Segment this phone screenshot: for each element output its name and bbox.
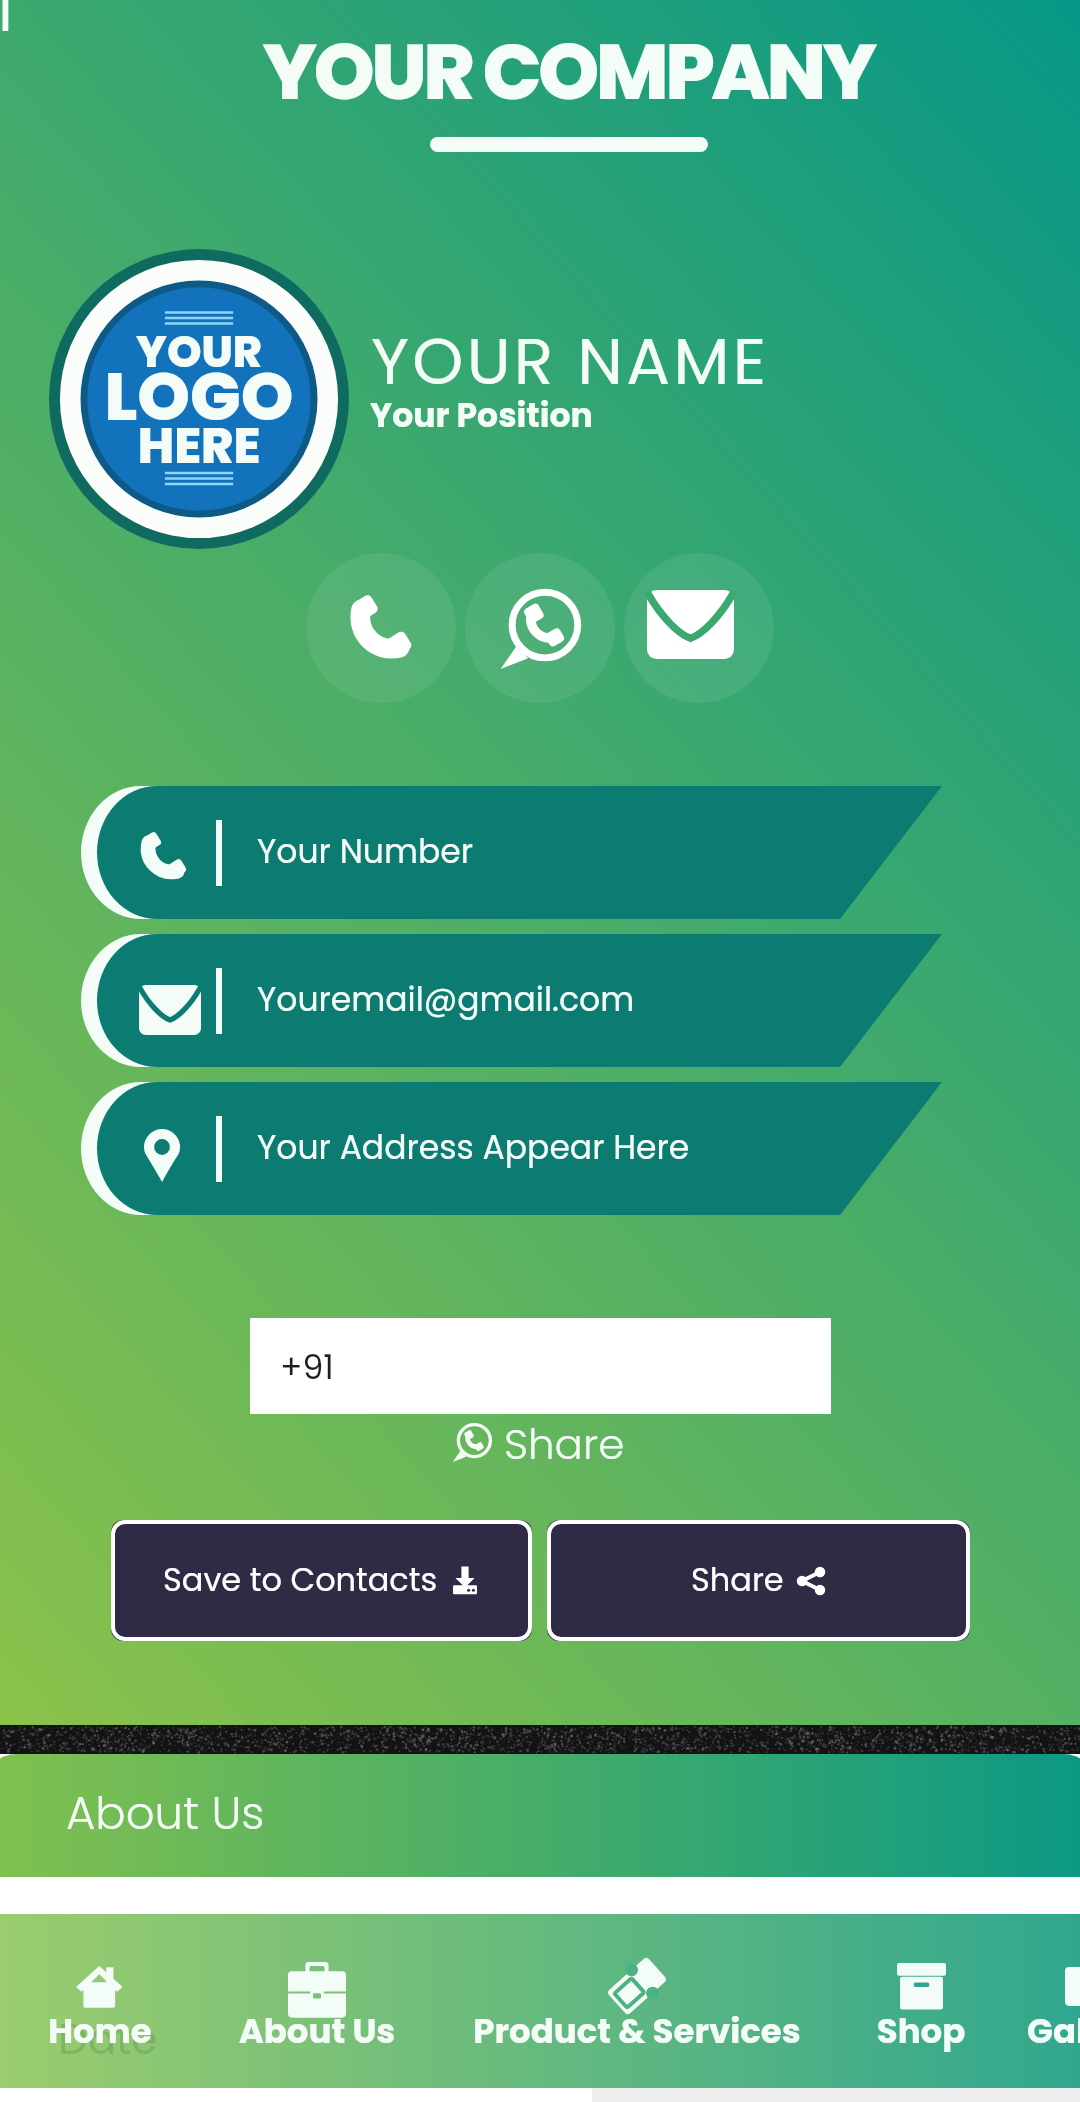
button[interactable]: WhatsApp	[465, 553, 615, 703]
button[interactable]: Save to Contacts	[111, 1520, 532, 1641]
staticText: 1	[0, 0, 14, 51]
button[interactable]: About Us	[0, 1754, 1080, 1877]
staticText: Your Number	[257, 828, 474, 874]
staticText: Home	[0, 2007, 280, 2055]
button[interactable]: Address	[0, 1082, 1080, 1215]
staticText: +91	[280, 1344, 334, 1390]
staticText: YOUR	[49, 321, 349, 383]
staticText: Save to Contacts	[163, 1557, 438, 1602]
button[interactable]: Share	[547, 1520, 970, 1641]
staticText: About Us	[137, 2007, 497, 2055]
button[interactable]: Shop	[741, 1914, 1080, 2088]
button[interactable]: About Us	[137, 1914, 497, 2088]
staticText: Your Address Appear Here	[257, 1124, 690, 1170]
staticText: LOGO	[49, 350, 349, 444]
button[interactable]: Email	[624, 553, 774, 703]
button[interactable]: Email	[0, 934, 1080, 1067]
staticText: Share	[691, 1557, 784, 1602]
button[interactable]: Home	[0, 1914, 280, 2088]
staticText: Product & Services	[457, 2007, 817, 2055]
staticText: YOUR NAME	[371, 316, 770, 407]
staticText: Gallery	[910, 2007, 1080, 2055]
staticText: YOUR COMPANY	[28, 17, 1080, 126]
staticText: Your Position	[370, 392, 593, 438]
button[interactable]: Call	[306, 553, 456, 703]
button[interactable]: Call	[0, 786, 1080, 919]
button[interactable]: Product & Services	[457, 1914, 817, 2088]
staticText: About Us	[66, 1782, 265, 1845]
staticText: Youremail@gmail.com	[257, 976, 635, 1022]
button[interactable]: Gallery	[910, 1914, 1080, 2088]
staticText: Date	[58, 2010, 158, 2069]
button[interactable]: +91	[250, 1318, 831, 1414]
staticText: HERE	[49, 412, 349, 481]
staticText: Shop	[741, 2007, 1080, 2055]
button[interactable]: Share	[452, 1417, 625, 1469]
staticText: Share	[504, 1415, 625, 1467]
